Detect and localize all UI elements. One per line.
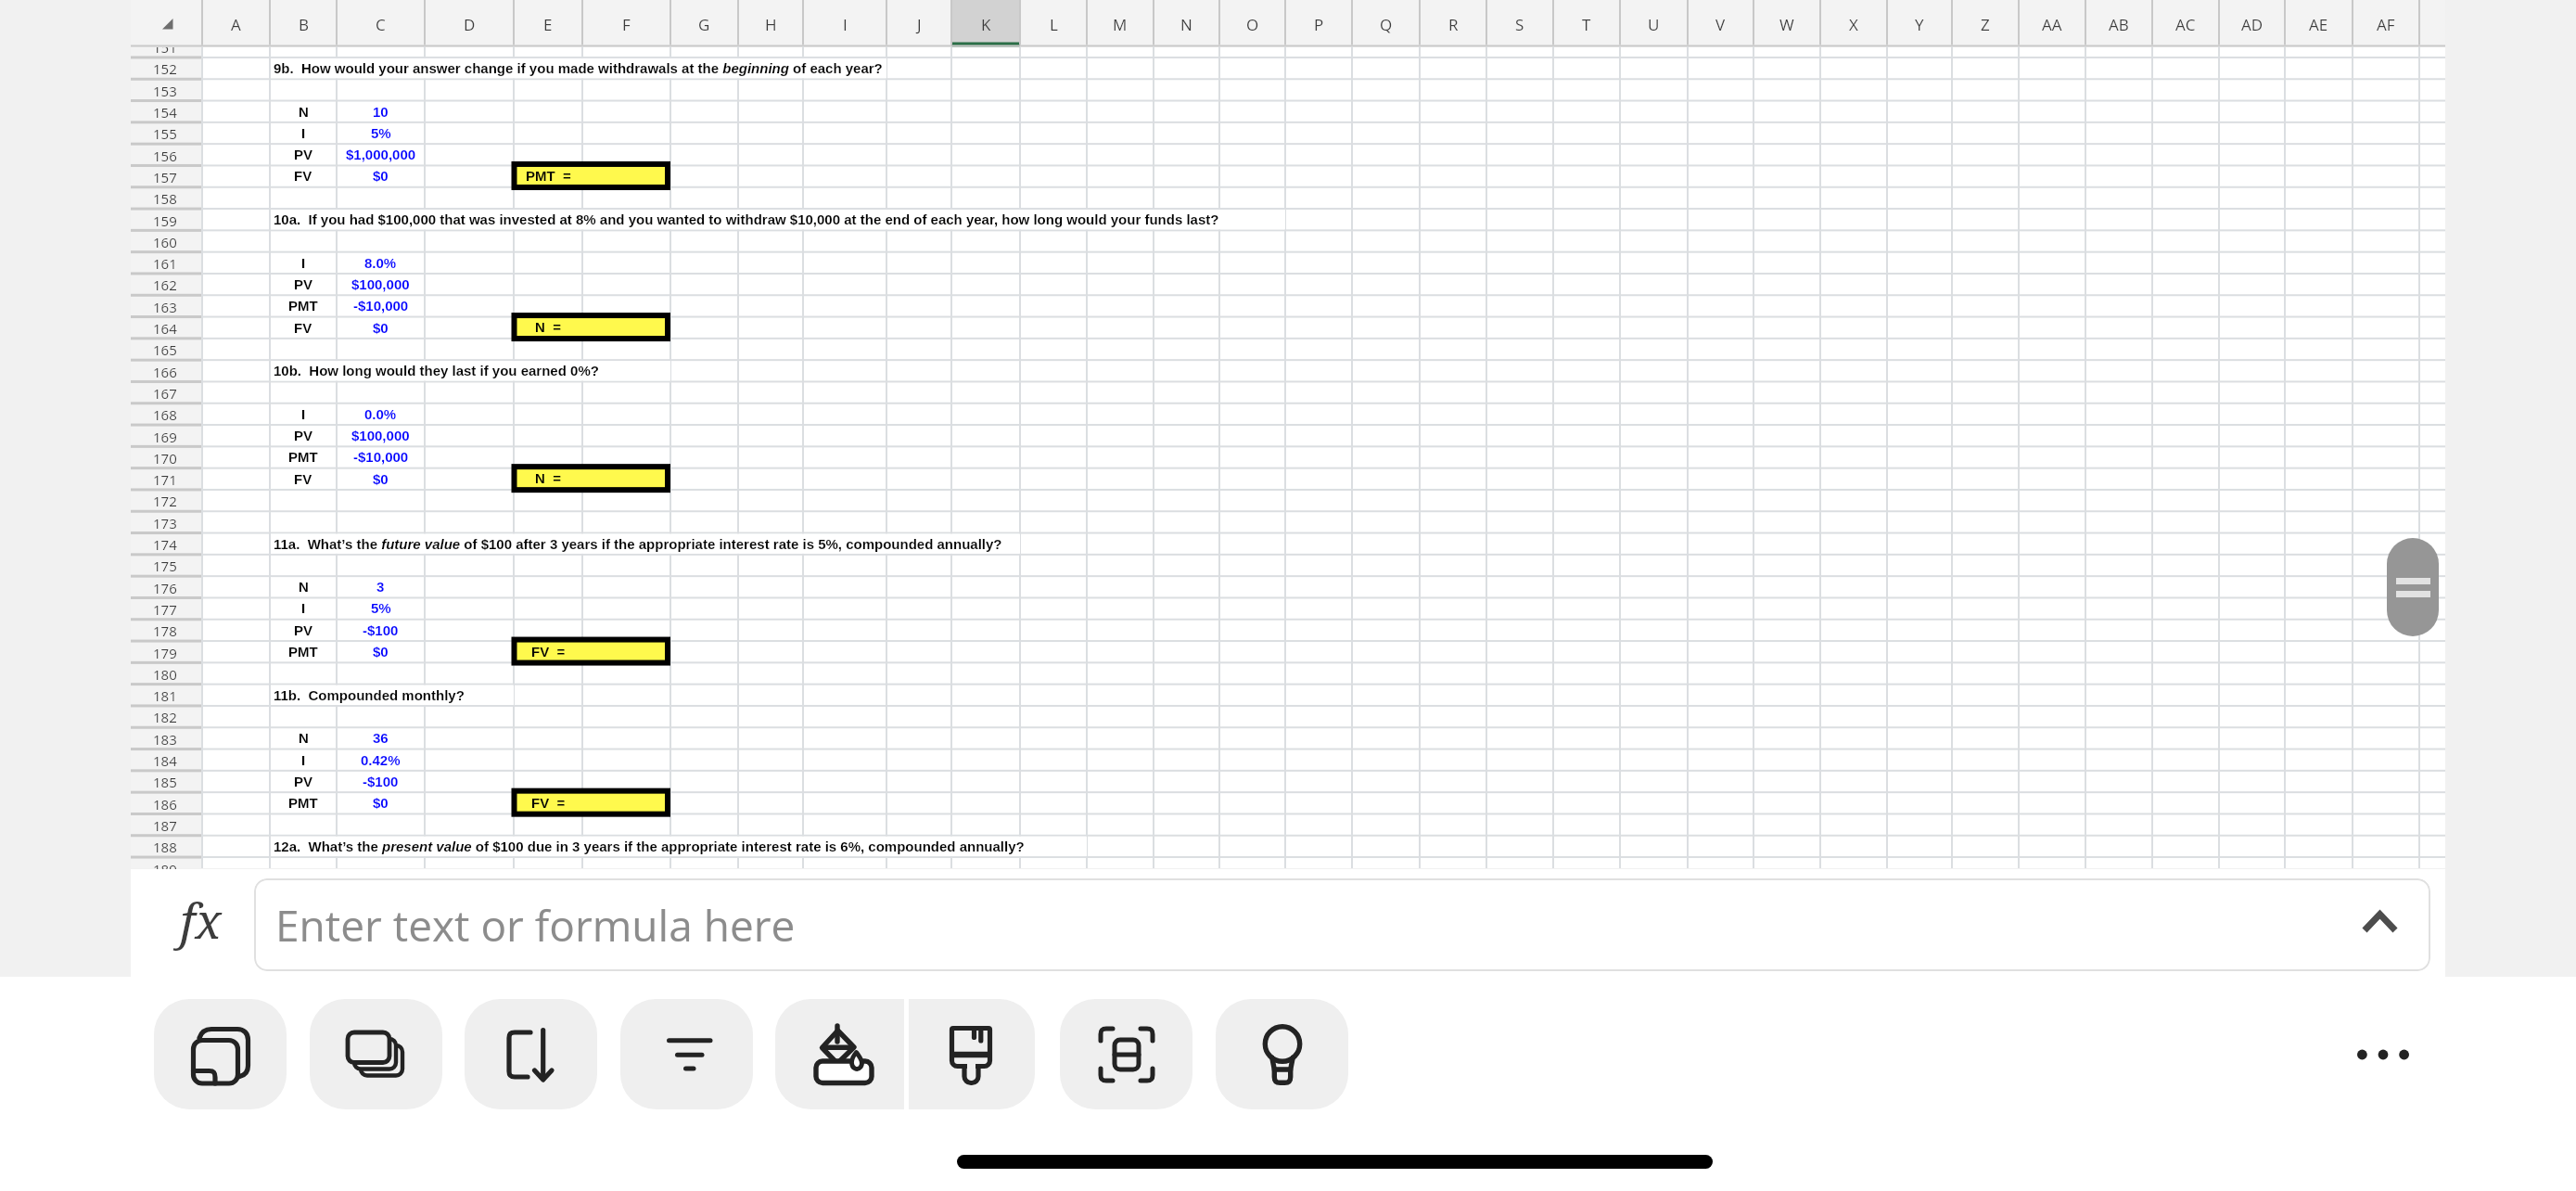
button[interactable]: Row 190 [131, 187, 202, 209]
button[interactable]: Column W [1753, 0, 1820, 48]
button[interactable]: Row 190 [131, 490, 202, 511]
button[interactable]: Column L [1020, 0, 1087, 48]
button[interactable]: Row 190 [131, 447, 202, 468]
button[interactable]: Row 190 [131, 58, 202, 79]
button[interactable]: Row 190 [131, 166, 202, 187]
button[interactable]: More options [2318, 999, 2448, 1109]
button[interactable]: Row 190 [131, 80, 202, 101]
button[interactable]: Column X [1820, 0, 1887, 48]
button[interactable]: Column AD [2219, 0, 2285, 48]
staticText: 0.0% [364, 406, 397, 422]
button[interactable]: Row 190 [131, 577, 202, 598]
button[interactable]: Enter text or formula here [254, 878, 2430, 971]
button[interactable]: Column S [1486, 0, 1553, 48]
staticText: AC [2175, 14, 2196, 35]
button[interactable]: Row 190 [131, 361, 202, 382]
button[interactable]: Row 190 [131, 47, 202, 58]
button[interactable]: FV = [514, 788, 582, 817]
button[interactable]: Ideas [1216, 999, 1348, 1109]
button[interactable]: Row 190 [131, 403, 202, 425]
button[interactable]: Filter [620, 999, 753, 1109]
button[interactable]: Column T [1553, 0, 1620, 48]
button[interactable]: Column D [425, 0, 514, 48]
button[interactable]: Sheets [310, 999, 442, 1109]
staticText: 12a. What’s the present value of $100 du… [274, 839, 1025, 854]
button[interactable]: Column AF [2353, 0, 2419, 48]
button[interactable]: Row 190 [131, 274, 202, 295]
staticText: 11b. Compounded monthly? [274, 687, 465, 703]
button[interactable]: Expand formula bar [2346, 890, 2415, 959]
button[interactable]: Row 190 [131, 814, 202, 836]
staticText: 188 [153, 838, 177, 856]
button[interactable]: Row 190 [131, 620, 202, 641]
button[interactable]: Column Y [1887, 0, 1952, 48]
button[interactable]: Row 190 [131, 749, 202, 771]
button[interactable]: Column Z [1952, 0, 2019, 48]
button[interactable]: Column AB [2085, 0, 2152, 48]
button[interactable]: Row 190 [131, 836, 202, 857]
button[interactable]: Row 190 [131, 598, 202, 620]
button[interactable]: Fill colour [775, 999, 904, 1109]
button[interactable]: Column M [1087, 0, 1154, 48]
button[interactable]: Row 190 [131, 706, 202, 727]
button[interactable]: Row 190 [131, 339, 202, 360]
button[interactable]: Row 190 [131, 296, 202, 317]
staticText: 9b. How would your answer change if you … [274, 60, 883, 76]
button[interactable]: Column H [738, 0, 803, 48]
button[interactable]: Row 190 [131, 685, 202, 706]
button[interactable]: FV = [514, 637, 582, 666]
button[interactable]: Column F [582, 0, 670, 48]
staticText: 176 [153, 579, 177, 597]
button[interactable]: Column A [202, 0, 270, 48]
button[interactable]: Column I [803, 0, 886, 48]
staticText: N [299, 730, 309, 746]
button[interactable]: Column C [337, 0, 425, 48]
button[interactable]: Row 190 [131, 231, 202, 252]
button[interactable]: Row 190 [131, 555, 202, 576]
button[interactable]: Column O [1219, 0, 1285, 48]
button[interactable]: Row 190 [131, 145, 202, 166]
button[interactable]: Row 190 [131, 101, 202, 122]
button[interactable]: Row 190 [131, 317, 202, 339]
button[interactable]: Scroll [2387, 538, 2439, 636]
button[interactable]: Column AC [2152, 0, 2219, 48]
button[interactable]: Row 190 [131, 210, 202, 231]
button[interactable]: Row 190 [131, 468, 202, 490]
button[interactable]: Column AA [2019, 0, 2085, 48]
button[interactable]: Column U [1620, 0, 1688, 48]
button[interactable]: Column P [1285, 0, 1352, 48]
button[interactable]: Duplicate [154, 999, 287, 1109]
button[interactable]: Insert function [163, 882, 237, 956]
button[interactable]: Row 190 [131, 728, 202, 749]
button[interactable]: Column E [514, 0, 582, 48]
staticText: 184 [153, 751, 177, 770]
button[interactable]: Row 190 [131, 382, 202, 403]
button[interactable]: Row 190 [131, 512, 202, 533]
button[interactable]: Column N [1154, 0, 1219, 48]
button[interactable]: Row 190 [131, 858, 202, 869]
button[interactable]: Row 190 [131, 771, 202, 792]
button[interactable]: Sort [465, 999, 597, 1109]
button[interactable]: Row 190 [131, 122, 202, 144]
button[interactable]: Column K [951, 0, 1020, 48]
button[interactable]: N = [514, 313, 582, 341]
button[interactable]: Column B [270, 0, 337, 48]
staticText: 180 [153, 665, 177, 684]
button[interactable]: Column G [670, 0, 738, 48]
button[interactable]: PMT = [514, 161, 582, 190]
button[interactable]: Column J [886, 0, 951, 48]
button[interactable]: Select range [1060, 999, 1192, 1109]
button[interactable]: Row 190 [131, 793, 202, 814]
button[interactable]: Row 190 [131, 663, 202, 685]
button[interactable]: Column Q [1352, 0, 1420, 48]
button[interactable]: Row 190 [131, 252, 202, 274]
button[interactable]: Row 190 [131, 426, 202, 447]
button[interactable]: Row 190 [131, 533, 202, 555]
button[interactable]: N = [514, 464, 582, 493]
button[interactable]: Format painter [909, 999, 1035, 1109]
staticText: 0.42% [361, 752, 401, 768]
button[interactable]: Column V [1688, 0, 1753, 48]
button[interactable]: Column R [1420, 0, 1486, 48]
button[interactable]: Row 190 [131, 642, 202, 663]
button[interactable]: Column AE [2285, 0, 2353, 48]
